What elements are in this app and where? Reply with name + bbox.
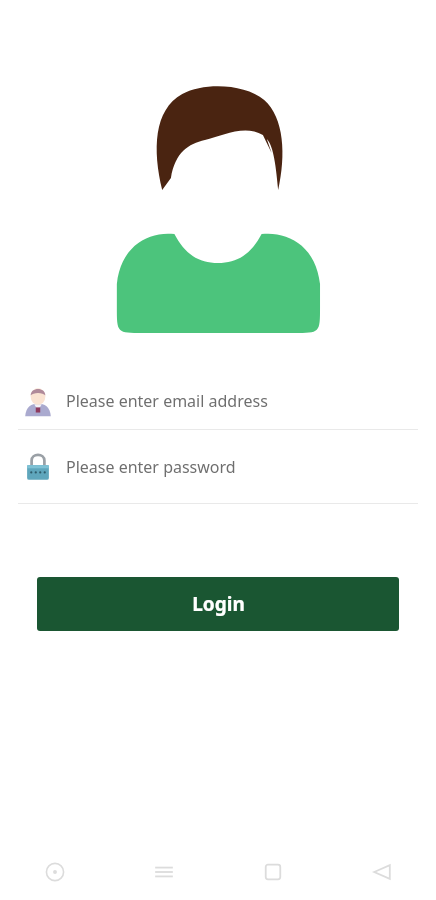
button[interactable]: Menu <box>109 844 218 900</box>
button[interactable]: Login <box>37 577 399 631</box>
staticText: Please enter password <box>66 456 236 478</box>
staticText: Please enter email address <box>66 390 268 412</box>
button[interactable]: Recents <box>218 844 327 900</box>
button[interactable]: Please enter password <box>0 430 436 503</box>
button[interactable]: Back <box>327 844 436 900</box>
staticText: Login <box>192 591 245 617</box>
button[interactable]: Assistant <box>0 844 109 900</box>
button[interactable]: Please enter email address <box>0 372 436 429</box>
